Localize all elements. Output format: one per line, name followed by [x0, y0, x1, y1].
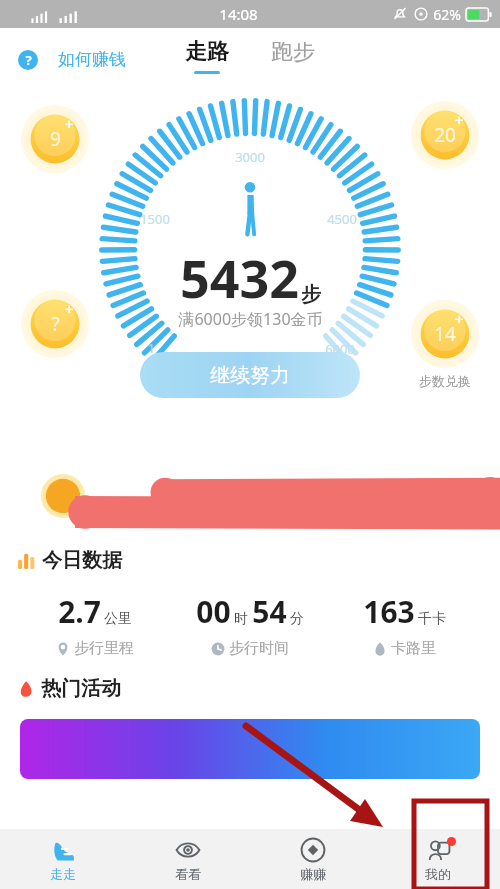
button[interactable]: 金币 14: [408, 297, 482, 371]
staticText: 继续努力: [210, 363, 290, 388]
staticText: 今日数据: [42, 548, 122, 573]
staticText: 公里: [104, 610, 132, 628]
staticText: 4500: [327, 210, 357, 228]
button[interactable]: ?: [16, 45, 128, 74]
staticText: 卡路里: [391, 639, 436, 658]
staticText: 62%: [433, 5, 461, 24]
button[interactable]: 00: [172, 591, 327, 658]
staticText: 3000: [235, 148, 265, 166]
button[interactable]: 赚赚: [250, 829, 375, 889]
staticText: 步行里程: [74, 639, 134, 658]
staticText: 163: [363, 591, 415, 632]
staticText: ?: [51, 311, 60, 337]
button[interactable]: 2.7: [18, 591, 172, 658]
staticText: 2.7: [58, 591, 101, 632]
staticText: 6000: [325, 340, 355, 358]
button[interactable]: 金币 ?: [18, 287, 92, 361]
staticText: 14:08: [219, 4, 258, 24]
button[interactable]: 走路: [177, 38, 237, 74]
staticText: 如何赚钱: [58, 49, 126, 70]
staticText: 20: [434, 122, 456, 148]
button[interactable]: 看看: [125, 829, 250, 889]
staticText: ?: [25, 51, 32, 69]
staticText: 步数兑换: [419, 373, 471, 389]
staticText: 步: [301, 282, 321, 307]
staticText: 赚赚: [300, 866, 326, 882]
staticText: 5432: [180, 242, 299, 313]
button[interactable]: [25, 458, 475, 534]
staticText: 00: [196, 591, 231, 632]
button[interactable]: 163: [327, 591, 482, 658]
staticText: 14: [434, 321, 456, 347]
staticText: 分: [290, 610, 304, 628]
staticText: 跑步: [271, 42, 315, 66]
staticText: 热门活动: [41, 676, 121, 701]
button[interactable]: 我的: [375, 829, 500, 889]
staticText: 54: [252, 591, 287, 632]
staticText: 看看: [175, 866, 201, 882]
button[interactable]: 跑步: [263, 42, 323, 70]
staticText: 时: [234, 610, 248, 628]
button[interactable]: [20, 719, 480, 779]
staticText: 满6000步领130金币: [178, 308, 323, 330]
button[interactable]: 金币 9: [18, 102, 92, 176]
staticText: 9: [50, 126, 61, 152]
button[interactable]: 继续努力: [140, 352, 360, 398]
staticText: 走走: [50, 866, 76, 882]
staticText: 我的: [425, 866, 451, 882]
staticText: 1: [148, 340, 155, 356]
staticText: 1500: [140, 210, 170, 228]
staticText: 步行时间: [229, 639, 289, 658]
staticText: 走路: [185, 38, 229, 66]
button[interactable]: 走走: [0, 829, 125, 889]
staticText: 千卡: [418, 610, 446, 628]
button[interactable]: 金币 20: [408, 98, 482, 172]
